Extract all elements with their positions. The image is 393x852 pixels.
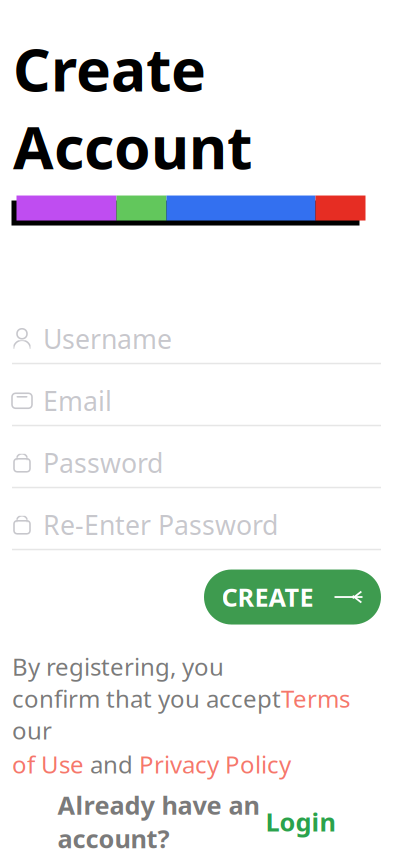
button[interactable]: CREATE [204, 569, 381, 624]
staticText: Re-Enter Password [43, 507, 278, 542]
button[interactable]: Terms [281, 682, 350, 714]
staticText: Email [43, 383, 112, 418]
button[interactable]: Username [12, 308, 381, 370]
staticText: Username [43, 321, 172, 356]
staticText: Already have an account? [57, 788, 259, 852]
button[interactable]: Password [12, 432, 381, 494]
button[interactable]: Already have an account? [57, 788, 335, 852]
staticText: By registering, you confirm that you acc… [12, 650, 281, 746]
staticText: Create Account [13, 30, 252, 185]
button[interactable]: Email [12, 370, 381, 432]
button[interactable]: Privacy Policy [139, 748, 291, 780]
button[interactable]: Re-Enter Password [12, 494, 381, 556]
staticText: CREATE [221, 580, 313, 614]
staticText: Terms [281, 682, 350, 714]
staticText: Login [265, 805, 335, 838]
staticText: Password [43, 445, 163, 480]
staticText: of Use [12, 748, 84, 780]
staticText: and [84, 748, 139, 780]
button[interactable]: of Use [12, 748, 84, 780]
staticText: Privacy Policy [139, 748, 291, 780]
